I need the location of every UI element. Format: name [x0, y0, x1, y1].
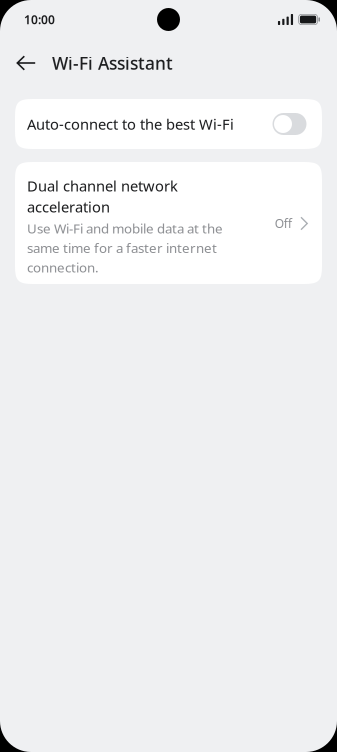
staticText: Off — [275, 215, 292, 231]
staticText: Use Wi-Fi and mobile data at the same ti… — [27, 219, 223, 276]
button[interactable]: Dual channel network acceleration — [15, 162, 322, 284]
button[interactable]: Back — [16, 45, 52, 81]
button[interactable]: Auto-connect to the best Wi-Fi — [15, 99, 322, 149]
staticText: 10:00 — [24, 11, 55, 27]
staticText: Dual channel network acceleration — [27, 176, 178, 216]
staticText: Auto-connect to the best Wi-Fi — [27, 114, 234, 134]
staticText: Wi-Fi Assistant — [52, 51, 173, 74]
